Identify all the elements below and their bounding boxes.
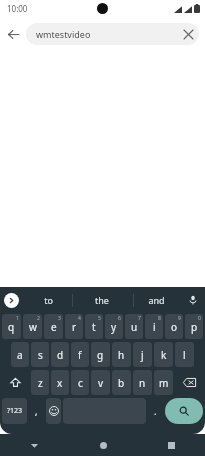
staticText: 4 (78, 315, 81, 322)
staticText: ?123 (7, 406, 23, 416)
button[interactable]: b (112, 370, 131, 395)
button[interactable]: j (133, 342, 152, 367)
staticText: 8 (158, 315, 161, 322)
button[interactable]: q (2, 314, 21, 339)
staticText: l (183, 348, 186, 362)
button[interactable]: Backspace (175, 370, 203, 395)
button[interactable]: Voice input (185, 292, 201, 308)
button[interactable]: n (133, 370, 152, 395)
staticText: the (95, 294, 109, 306)
button[interactable]: Clear (177, 23, 199, 45)
staticText: w (29, 320, 37, 334)
button[interactable]: i (145, 314, 163, 339)
staticText: m (159, 376, 169, 390)
staticText: 6 (118, 315, 121, 322)
button[interactable]: r (65, 314, 83, 339)
button[interactable]: Hide keyboard (0, 434, 69, 456)
button[interactable]: , (29, 398, 44, 424)
staticText: c (78, 376, 83, 390)
button[interactable]: f (71, 342, 89, 367)
button[interactable]: y (105, 314, 123, 339)
staticText: n (139, 376, 146, 390)
button[interactable]: Expand toolbar (4, 293, 19, 308)
staticText: 2 (37, 315, 40, 322)
button[interactable]: Recents (137, 434, 205, 456)
button[interactable]: t (85, 314, 103, 339)
button[interactable]: u (125, 314, 143, 339)
button[interactable]: s (31, 342, 49, 367)
button[interactable]: p (185, 314, 203, 339)
staticText: v (98, 376, 104, 390)
button[interactable]: g (91, 342, 110, 367)
staticText: , (35, 405, 38, 417)
button[interactable]: ?123 (2, 398, 27, 424)
staticText: s (38, 348, 43, 362)
staticText: i (153, 320, 156, 334)
button[interactable]: h (112, 342, 131, 367)
button[interactable]: the (75, 287, 129, 313)
button[interactable]: Home (69, 434, 137, 456)
staticText: 7 (138, 315, 141, 322)
button[interactable]: o (165, 314, 183, 339)
staticText: 1 (16, 315, 19, 322)
staticText: 0 (198, 315, 201, 322)
staticText: x (57, 376, 63, 390)
staticText: y (111, 320, 117, 334)
staticText: j (141, 348, 144, 362)
staticText: and (148, 294, 165, 306)
staticText: a (17, 348, 23, 362)
button[interactable]: k (154, 342, 173, 367)
button[interactable]: v (91, 370, 110, 395)
staticText: e (51, 320, 57, 334)
staticText: . (154, 405, 157, 417)
button[interactable]: z (31, 370, 49, 395)
button[interactable]: e (44, 314, 63, 339)
button[interactable]: wmtestvideo (26, 23, 199, 45)
staticText: q (8, 320, 15, 334)
staticText: r (72, 320, 77, 334)
button[interactable]: . (148, 398, 163, 424)
staticText: p (191, 320, 198, 334)
button[interactable]: m (154, 370, 173, 395)
button[interactable]: and (129, 287, 183, 313)
button[interactable]: w (23, 314, 42, 339)
staticText: 10:00 (7, 3, 28, 14)
staticText: wmtestvideo (36, 28, 91, 40)
staticText: 5 (98, 315, 101, 322)
button[interactable]: Shift (2, 370, 29, 395)
staticText: 3 (58, 315, 61, 322)
staticText: 9 (178, 315, 181, 322)
button[interactable]: Emoji (46, 398, 61, 424)
staticText: z (38, 376, 43, 390)
staticText: f (78, 348, 82, 362)
staticText: t (92, 320, 96, 334)
button[interactable]: l (175, 342, 194, 367)
staticText: b (118, 376, 125, 390)
button[interactable]: Back (0, 17, 26, 51)
staticText: d (57, 348, 64, 362)
button[interactable]: a (11, 342, 29, 367)
button[interactable]: Search (165, 398, 203, 424)
staticText: u (131, 320, 138, 334)
button[interactable]: d (51, 342, 69, 367)
button[interactable]: x (51, 370, 69, 395)
staticText: o (171, 320, 178, 334)
staticText: h (118, 348, 125, 362)
staticText: g (97, 348, 104, 362)
button[interactable]: to (22, 287, 75, 313)
staticText: k (161, 348, 167, 362)
button[interactable]: c (71, 370, 89, 395)
staticText: to (44, 294, 53, 306)
